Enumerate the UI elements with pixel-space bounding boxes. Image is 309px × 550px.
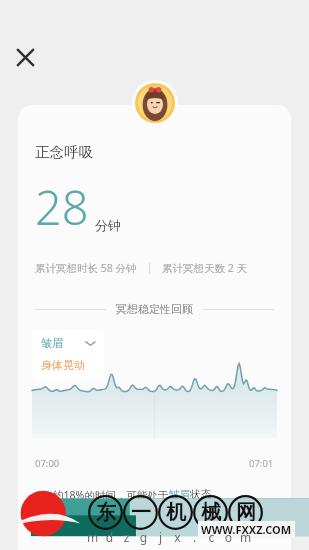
staticText: 状态 (190, 488, 211, 501)
staticText: 1 (35, 488, 42, 502)
staticText: 2 (35, 513, 42, 527)
staticText: 皱眉 (169, 488, 190, 501)
staticText: 正念呼吸 (35, 143, 93, 161)
staticText: 一 (131, 500, 151, 525)
staticText: 累计冥想天数 2 天 (162, 261, 247, 275)
button[interactable]: 皱眉 (32, 330, 104, 356)
staticText: c (203, 529, 220, 545)
staticText: 身体晃动 (169, 513, 211, 526)
staticText: 东 (96, 500, 116, 525)
staticText: . (186, 529, 203, 545)
staticText: 机 (166, 500, 186, 525)
staticText: 网 (236, 500, 256, 525)
staticText: 状态 (211, 513, 232, 526)
staticText: WWW.FXXZ.COM (201, 522, 292, 537)
staticText: 累计冥想时长 58 分钟 (35, 261, 137, 275)
staticText: x (169, 529, 186, 545)
staticText: m (237, 529, 254, 545)
staticText: 身体晃动 (41, 358, 85, 372)
staticText: 07:00 (35, 457, 60, 470)
staticText: z (118, 529, 135, 545)
button[interactable]: 身体晃动 (32, 356, 104, 380)
staticText: g (135, 529, 152, 545)
staticText: 07:01 (249, 457, 274, 470)
staticText: 冥想稳定性回顾 (116, 302, 193, 316)
staticText: 约18%的时间，可能处于 (53, 488, 169, 502)
staticText: j (152, 529, 169, 545)
staticText: o (220, 529, 237, 545)
staticText: d (101, 529, 118, 545)
staticText: 皱眉 (41, 336, 63, 350)
staticText: m (84, 529, 101, 545)
staticText: 约20%的时间，可能处于 (53, 513, 169, 527)
staticText: 械 (201, 500, 221, 525)
staticText: 分钟 (95, 217, 121, 233)
button[interactable]: Close (8, 40, 42, 74)
staticText: 28 (35, 175, 89, 239)
